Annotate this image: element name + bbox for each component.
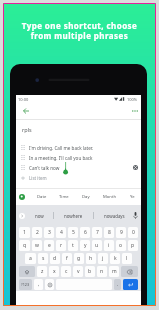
- button[interactable]: More options: [129, 105, 140, 116]
- staticText: Date: [37, 194, 47, 200]
- button[interactable]: u: [92, 240, 102, 251]
- staticText: n: [100, 268, 104, 275]
- button[interactable]: 1: [19, 227, 30, 238]
- staticText: 1: [23, 229, 26, 236]
- button[interactable]: h: [86, 253, 96, 264]
- button[interactable]: i: [104, 240, 114, 251]
- button[interactable]: 9: [116, 227, 126, 238]
- staticText: y: [84, 242, 87, 249]
- staticText: h: [89, 255, 93, 262]
- button[interactable]: s: [38, 253, 48, 264]
- staticText: Time: [59, 194, 69, 200]
- staticText: o: [119, 242, 123, 249]
- button[interactable]: 4: [56, 227, 66, 238]
- staticText: g: [77, 255, 81, 262]
- button[interactable]: 8: [104, 227, 114, 238]
- staticText: 8: [108, 229, 111, 236]
- staticText: 3: [48, 229, 51, 236]
- button[interactable]: t: [68, 240, 78, 251]
- button[interactable]: Can't talk now: [21, 163, 138, 172]
- button[interactable]: d: [50, 253, 60, 264]
- staticText: z: [41, 268, 44, 275]
- staticText: j: [102, 255, 104, 262]
- button[interactable]: r: [56, 240, 66, 251]
- staticText: b: [88, 268, 92, 275]
- staticText: 7: [96, 229, 99, 236]
- button[interactable]: 2: [32, 227, 42, 238]
- staticText: .: [117, 281, 119, 288]
- button[interactable]: Navigate up: [20, 105, 31, 116]
- button[interactable]: g: [74, 253, 84, 264]
- button[interactable]: l: [122, 253, 132, 264]
- button[interactable]: In a meeting. I'll call you back: [21, 153, 138, 162]
- staticText: i: [108, 242, 110, 249]
- staticText: I'm driving. Call me back later.: [29, 145, 94, 151]
- staticText: w: [35, 242, 39, 249]
- staticText: nowhere: [64, 213, 83, 219]
- staticText: l: [126, 255, 128, 262]
- staticText: 0: [132, 229, 135, 236]
- button[interactable]: o: [116, 240, 126, 251]
- button[interactable]: e: [44, 240, 54, 251]
- button[interactable]: b: [85, 266, 95, 277]
- staticText: q: [23, 242, 27, 249]
- button[interactable]: n: [97, 266, 107, 277]
- staticText: r: [60, 242, 63, 249]
- button[interactable]: List item: [21, 173, 47, 182]
- staticText: a: [29, 255, 32, 262]
- staticText: c: [65, 268, 68, 275]
- staticText: ,: [38, 281, 40, 288]
- button[interactable]: a: [25, 253, 36, 264]
- button[interactable]: Backspace: [121, 266, 138, 277]
- staticText: p: [131, 242, 135, 249]
- button[interactable]: f: [62, 253, 72, 264]
- staticText: x: [53, 268, 56, 275]
- button[interactable]: 0: [128, 227, 138, 238]
- staticText: 4: [60, 229, 63, 236]
- button[interactable]: 5: [68, 227, 78, 238]
- staticText: s: [42, 255, 45, 262]
- staticText: f: [66, 255, 68, 262]
- staticText: m: [112, 268, 117, 275]
- staticText: Can't talk now: [29, 165, 60, 171]
- button[interactable]: x: [49, 266, 59, 277]
- staticText: ?123: [21, 282, 30, 287]
- staticText: u: [95, 242, 99, 249]
- staticText: v: [77, 268, 80, 275]
- button[interactable]: j: [98, 253, 108, 264]
- button[interactable]: 3: [44, 227, 54, 238]
- button[interactable]: Comma: [34, 279, 43, 290]
- button[interactable]: z: [37, 266, 47, 277]
- staticText: 5: [72, 229, 75, 236]
- button[interactable]: v: [73, 266, 83, 277]
- staticText: rpls: [22, 126, 32, 133]
- button[interactable]: Enter: [123, 279, 138, 290]
- button[interactable]: Emoji: [45, 279, 54, 290]
- button[interactable]: m: [109, 266, 119, 277]
- button[interactable]: I'm driving. Call me back later.: [21, 143, 138, 152]
- button[interactable]: Period: [114, 279, 121, 290]
- button[interactable]: p: [128, 240, 138, 251]
- staticText: e: [48, 242, 51, 249]
- button[interactable]: ?123: [19, 279, 32, 290]
- staticText: 10:00: [18, 97, 29, 102]
- button[interactable]: Shift: [19, 266, 35, 277]
- staticText: Day: [82, 194, 90, 200]
- button[interactable]: k: [110, 253, 120, 264]
- staticText: t: [72, 242, 74, 249]
- button[interactable]: 7: [92, 227, 102, 238]
- staticText: 100%: [127, 97, 138, 102]
- staticText: Ye: [130, 194, 135, 200]
- staticText: List item: [29, 175, 47, 181]
- staticText: k: [114, 255, 117, 262]
- button[interactable]: c: [61, 266, 71, 277]
- staticText: In a meeting. I'll call you back: [29, 155, 93, 161]
- button[interactable]: y: [80, 240, 90, 251]
- button[interactable]: 6: [80, 227, 90, 238]
- staticText: 6: [84, 229, 87, 236]
- button[interactable]: q: [19, 240, 30, 251]
- button[interactable]: w: [32, 240, 42, 251]
- staticText: Type one shortcut, choose from multiple …: [3, 20, 156, 41]
- staticText: 9: [120, 229, 123, 236]
